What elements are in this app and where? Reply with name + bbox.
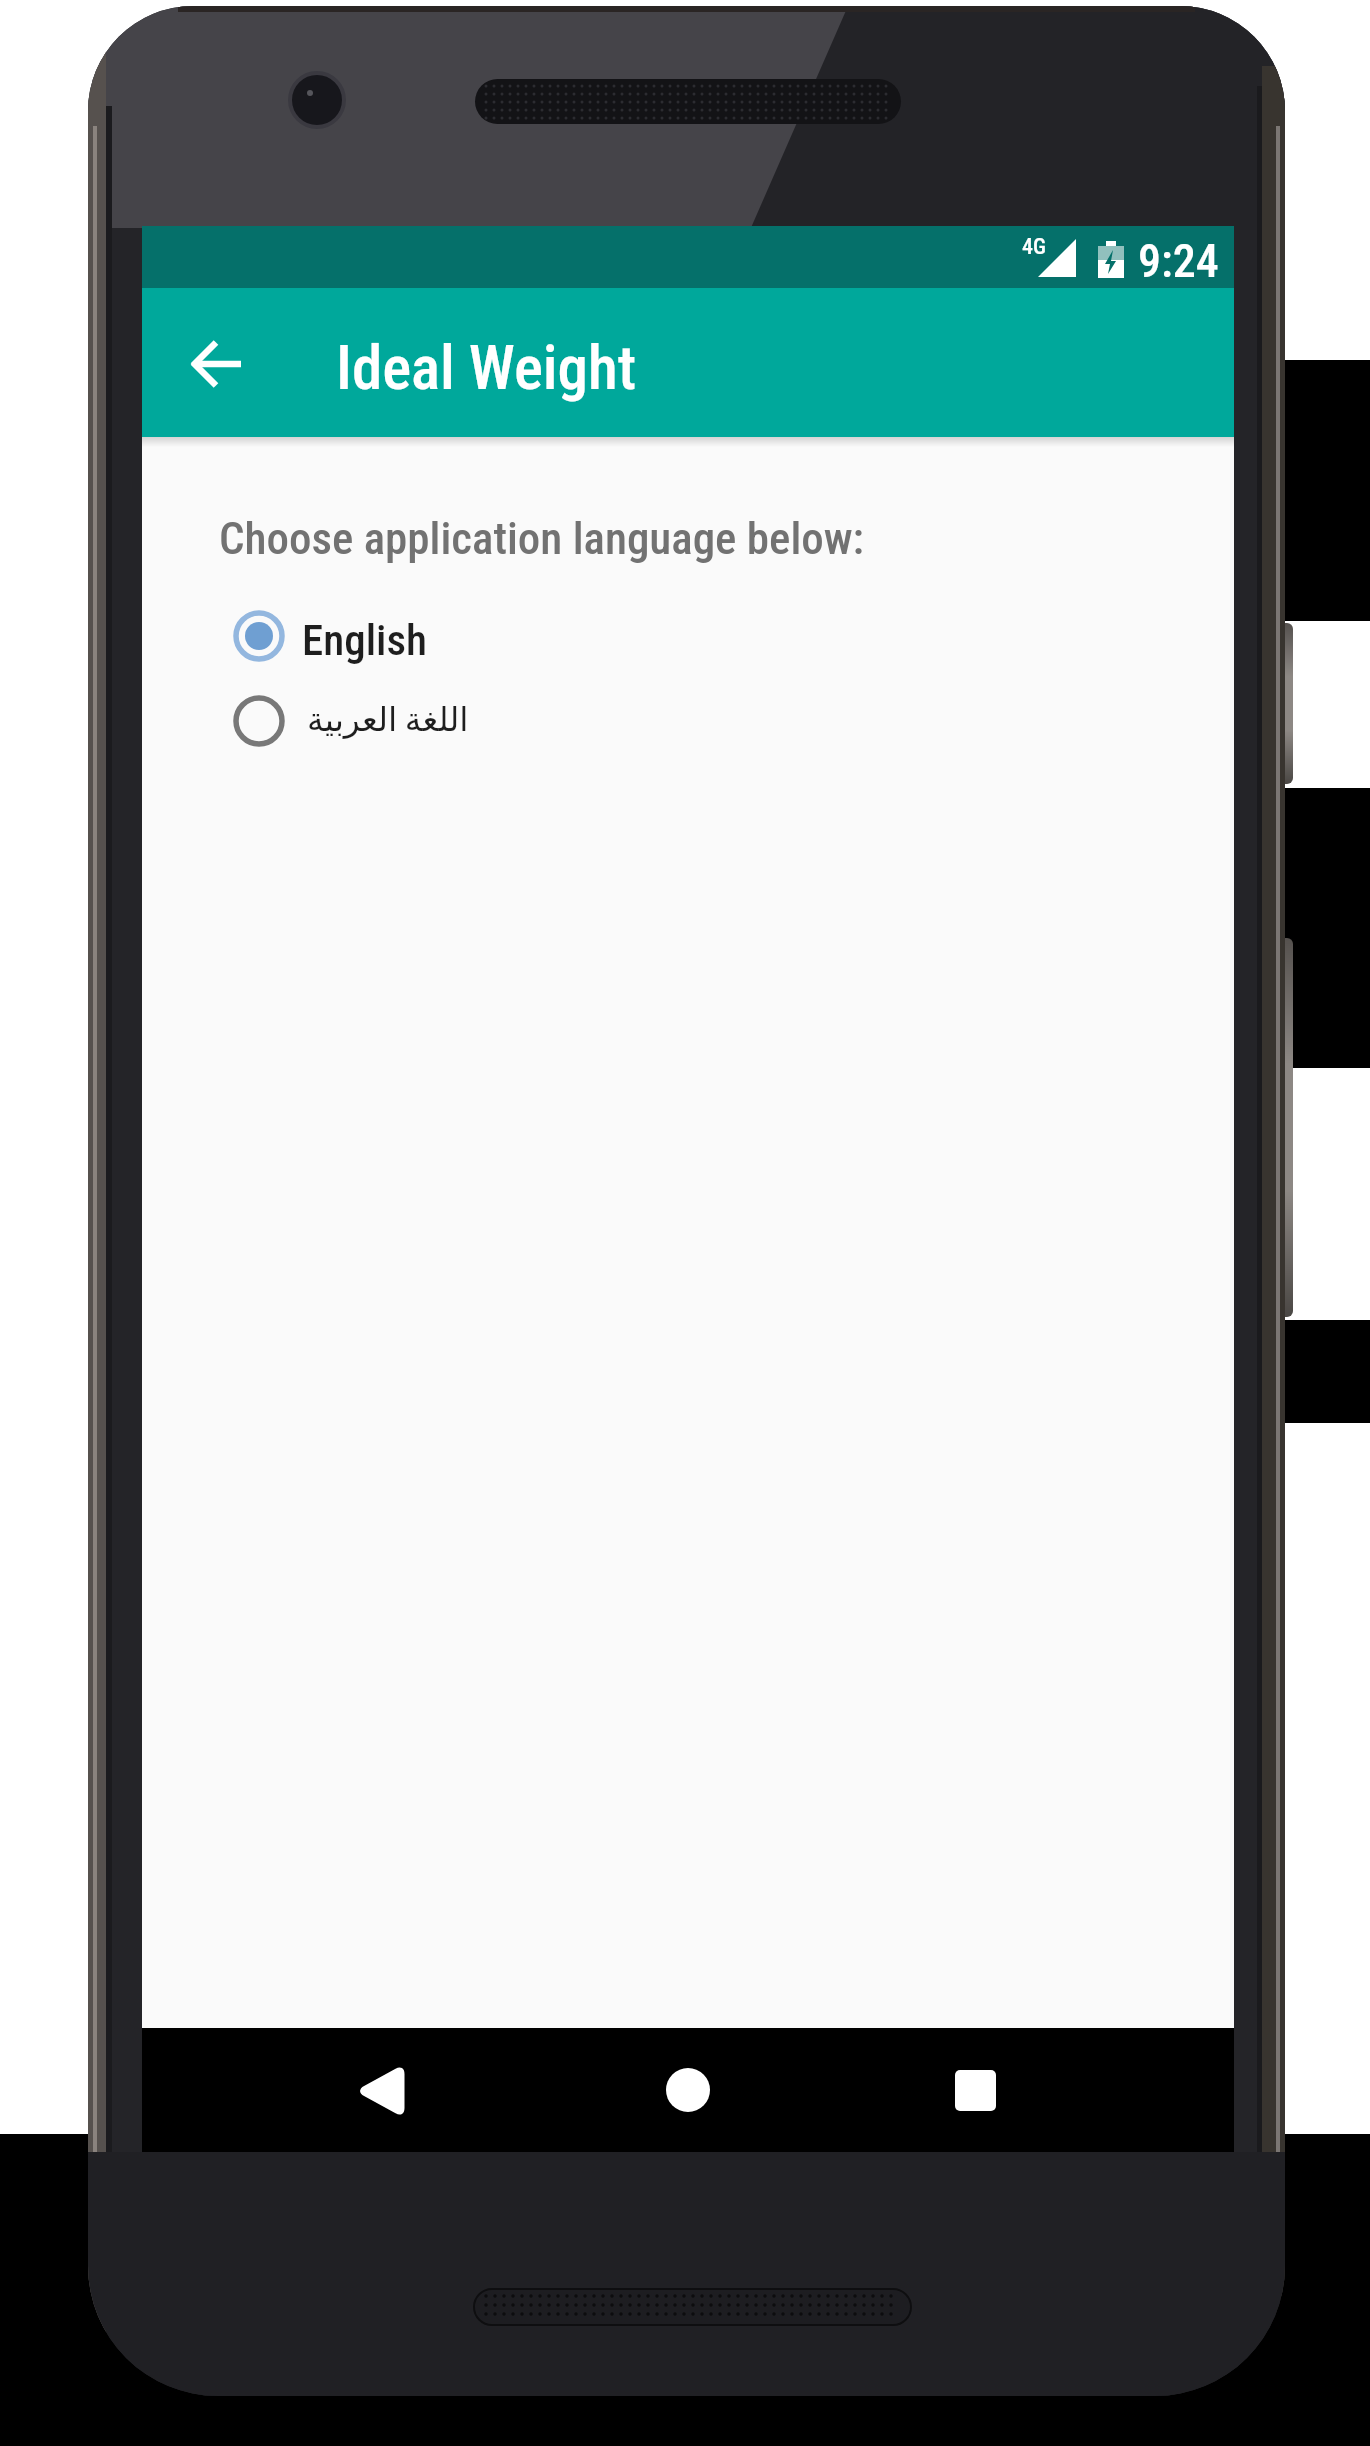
staticText: 4G (1022, 234, 1046, 260)
staticText: Ideal Weight (336, 332, 637, 403)
button[interactable]: اللغة العربية (206, 681, 626, 761)
staticText: اللغة العربية (307, 700, 469, 739)
staticText: Choose application language below: (219, 512, 865, 565)
staticText: English (302, 615, 428, 665)
button[interactable]: English (206, 593, 626, 673)
button[interactable] (338, 2048, 424, 2134)
button[interactable] (932, 2048, 1020, 2134)
button[interactable] (167, 314, 267, 414)
staticText: 9:24 (1138, 234, 1219, 288)
button[interactable] (645, 2047, 731, 2133)
